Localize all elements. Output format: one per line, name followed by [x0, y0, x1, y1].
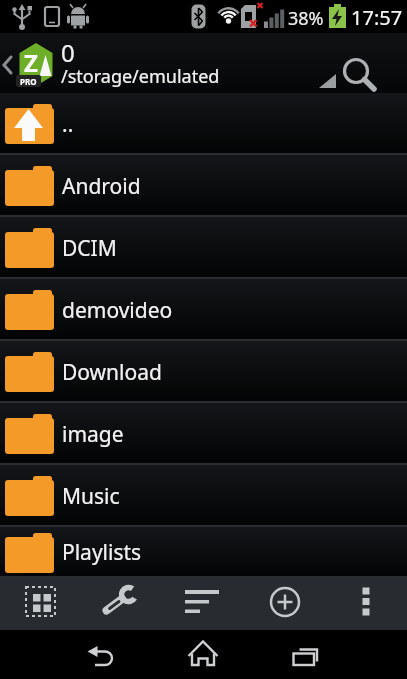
button[interactable]	[271, 630, 407, 679]
staticText: PRO	[20, 76, 37, 87]
staticText: /storage/emulated	[61, 64, 220, 89]
staticText: demovideo	[62, 296, 173, 325]
button[interactable]: Download	[0, 341, 407, 403]
button[interactable]	[135, 630, 271, 679]
button[interactable]: DCIM	[0, 217, 407, 279]
staticText: DCIM	[62, 234, 117, 263]
staticText: Z	[24, 46, 38, 79]
button[interactable]	[0, 33, 300, 93]
staticText: Playlists	[62, 538, 142, 567]
button[interactable]	[330, 48, 390, 93]
button[interactable]	[164, 578, 245, 630]
staticText: 0	[61, 36, 75, 69]
staticText: 38%	[288, 6, 324, 31]
button[interactable]: Music	[0, 465, 407, 527]
staticText: 17:57	[351, 4, 403, 31]
button[interactable]	[326, 578, 407, 630]
button[interactable]	[245, 578, 326, 630]
button[interactable]: image	[0, 403, 407, 465]
button[interactable]: Playlists	[0, 527, 407, 578]
button[interactable]	[82, 578, 164, 630]
staticText: Music	[62, 482, 120, 511]
button[interactable]: ..	[0, 93, 407, 155]
staticText: Download	[62, 358, 162, 387]
staticText: Android	[62, 172, 141, 201]
staticText: ..	[62, 110, 74, 139]
staticText: image	[62, 420, 124, 449]
button[interactable]: demovideo	[0, 279, 407, 341]
button[interactable]	[0, 630, 135, 679]
button[interactable]	[0, 578, 82, 630]
button[interactable]: Android	[0, 155, 407, 217]
